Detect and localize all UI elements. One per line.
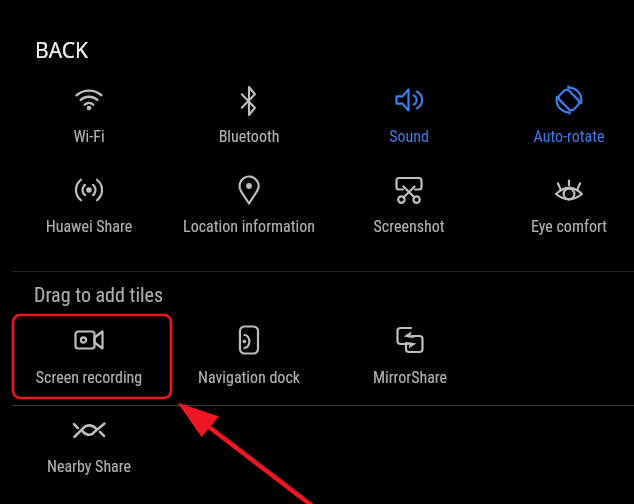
staticText: Drag to add tiles bbox=[34, 283, 164, 306]
button[interactable]: Wi-Fi bbox=[10, 68, 168, 152]
staticText: Nearby Share bbox=[10, 457, 168, 476]
button[interactable]: Bluetooth bbox=[170, 69, 328, 152]
staticText: Eye comfort bbox=[490, 217, 634, 236]
button[interactable]: Sound bbox=[330, 68, 488, 152]
staticText: Wi-Fi bbox=[10, 127, 168, 146]
button[interactable]: Auto-rotate bbox=[490, 68, 634, 152]
staticText: MirrorShare bbox=[331, 368, 489, 387]
staticText: Screen recording bbox=[10, 368, 168, 387]
button[interactable]: Huawei Share bbox=[10, 158, 168, 242]
staticText: Navigation dock bbox=[170, 368, 328, 387]
staticText: Bluetooth bbox=[170, 127, 328, 146]
staticText: Auto-rotate bbox=[490, 127, 634, 146]
staticText: Screenshot bbox=[330, 217, 488, 236]
staticText: Location information bbox=[170, 217, 328, 236]
button[interactable]: Eye comfort bbox=[490, 158, 634, 242]
staticText: Sound bbox=[330, 127, 488, 146]
button[interactable]: Navigation dock bbox=[170, 308, 328, 393]
button[interactable]: Screen recording bbox=[10, 308, 168, 393]
button[interactable]: MirrorShare bbox=[331, 308, 489, 393]
button[interactable]: Nearby Share bbox=[10, 398, 168, 482]
button[interactable]: BACK bbox=[35, 36, 88, 65]
button[interactable]: Screenshot bbox=[330, 158, 488, 242]
button[interactable]: Location information bbox=[170, 158, 328, 242]
staticText: Huawei Share bbox=[10, 217, 168, 236]
